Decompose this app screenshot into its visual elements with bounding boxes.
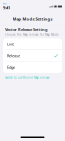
staticText: Edge: [7, 65, 15, 70]
staticText: Switch to a different Map release: [5, 76, 50, 79]
button[interactable]: Release: [3, 50, 62, 61]
staticText: Choose the Map release for Map Mode: [5, 33, 59, 36]
staticText: Vector Release Setting: [5, 27, 48, 32]
staticText: Map Mode Settings: [12, 16, 52, 22]
button[interactable]: Live: [3, 38, 62, 50]
staticText: ‹ Maps: [3, 3, 7, 5]
staticText: Release: [7, 53, 20, 58]
staticText: 9:41: [3, 5, 10, 10]
staticText: Live: [7, 41, 14, 47]
button[interactable]: Switch to a different Map release: [0, 73, 65, 79]
button[interactable]: Edge: [3, 62, 62, 73]
